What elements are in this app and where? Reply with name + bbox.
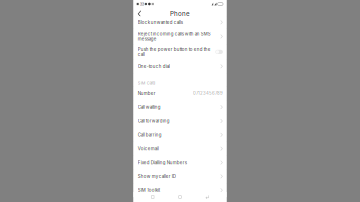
staticText: message [138, 36, 157, 42]
button[interactable]: Call forwarding [133, 114, 226, 128]
button[interactable]: Back [133, 8, 145, 16]
staticText: Call barring [138, 132, 162, 137]
staticText: Phone [170, 10, 190, 17]
staticText: Reject incoming calls with an SMS [138, 31, 211, 37]
button[interactable]: One-touch dial [133, 59, 226, 73]
button[interactable]: Call waiting [133, 100, 226, 114]
staticText: SIM Card [138, 81, 155, 85]
staticText: Voicemail [138, 146, 159, 151]
button[interactable]: Show my caller ID [133, 169, 226, 183]
button[interactable]: Number [133, 86, 226, 100]
button[interactable]: Fixed Dialling Numbers [133, 156, 226, 169]
button[interactable]: Recents [145, 192, 161, 202]
staticText: Show my caller ID [138, 174, 176, 179]
staticText: One-touch dial [138, 64, 170, 69]
button[interactable]: Reject incoming calls with an SMS [133, 28, 226, 44]
staticText: SIM Toolkit [138, 188, 160, 193]
staticText: 07123456789 [193, 91, 223, 96]
button[interactable]: Home [172, 192, 188, 202]
staticText: 33 [140, 2, 144, 6]
staticText: Push the power button to end the [138, 47, 211, 52]
button[interactable]: Push the power button to end the [133, 44, 226, 59]
staticText: call [138, 52, 145, 57]
staticText: Call forwarding [138, 118, 170, 124]
button[interactable]: Block unwanted calls [133, 16, 226, 28]
button[interactable]: Voicemail [133, 142, 226, 156]
staticText: Call waiting [138, 104, 161, 110]
button[interactable]: Call barring [133, 128, 226, 142]
button[interactable]: SIM Toolkit [133, 183, 226, 197]
staticText: Block unwanted calls [138, 20, 183, 25]
staticText: Fixed Dialling Numbers [138, 160, 187, 165]
button[interactable]: Back [199, 192, 215, 202]
staticText: Number [138, 91, 156, 96]
